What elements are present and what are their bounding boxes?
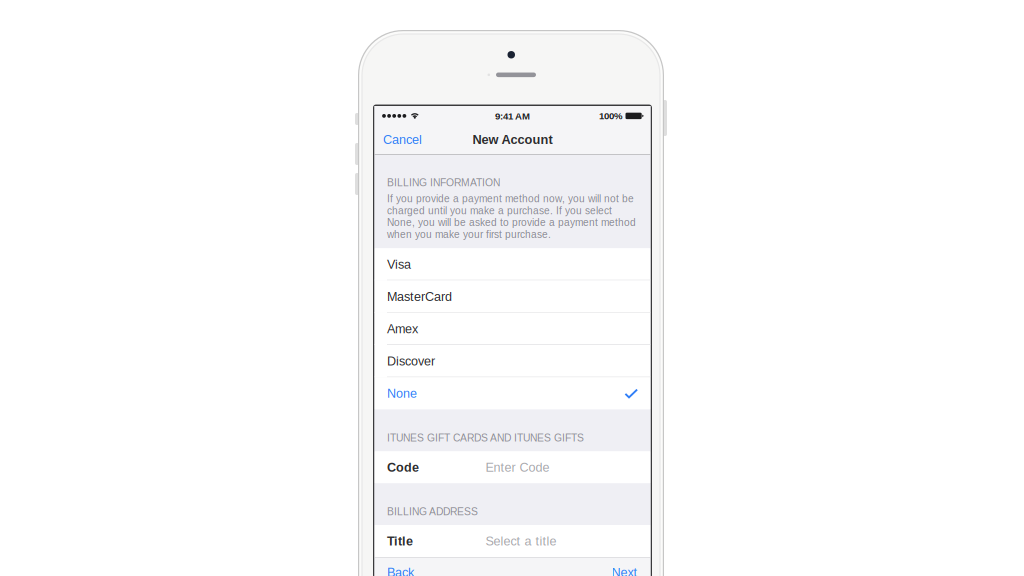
staticText: BILLING ADDRESS [387, 506, 478, 517]
staticText: 9:41 AM [495, 111, 530, 121]
button[interactable]: MasterCard [374, 280, 650, 313]
button[interactable]: Back [374, 557, 426, 576]
staticText: Enter Code [485, 460, 549, 474]
staticText: Code [387, 460, 419, 474]
button[interactable]: Discover [374, 345, 650, 377]
staticText: Visa [387, 257, 411, 271]
staticText: Back [387, 565, 414, 576]
staticText: 100% [599, 110, 623, 121]
staticText: Title [387, 534, 413, 548]
staticText: MasterCard [387, 289, 452, 304]
button[interactable]: None [374, 377, 650, 410]
button[interactable]: Code [374, 451, 650, 483]
button[interactable]: Visa [374, 248, 650, 280]
button[interactable]: Amex [374, 313, 650, 345]
staticText: Select a title [485, 534, 556, 548]
staticText: Next [611, 565, 637, 576]
button[interactable]: Next [598, 557, 650, 576]
staticText: Discover [387, 354, 435, 368]
staticText: If you provide a payment method now, you… [387, 193, 636, 240]
staticText: New Account [472, 132, 552, 147]
staticText: Cancel [383, 132, 422, 147]
staticText: BILLING INFORMATION [387, 177, 500, 188]
staticText: ITUNES GIFT CARDS AND ITUNES GIFTS [387, 432, 584, 444]
button[interactable]: Cancel [374, 124, 430, 155]
button[interactable]: Title [374, 525, 650, 557]
staticText: None [387, 386, 417, 400]
staticText: Amex [387, 322, 418, 336]
